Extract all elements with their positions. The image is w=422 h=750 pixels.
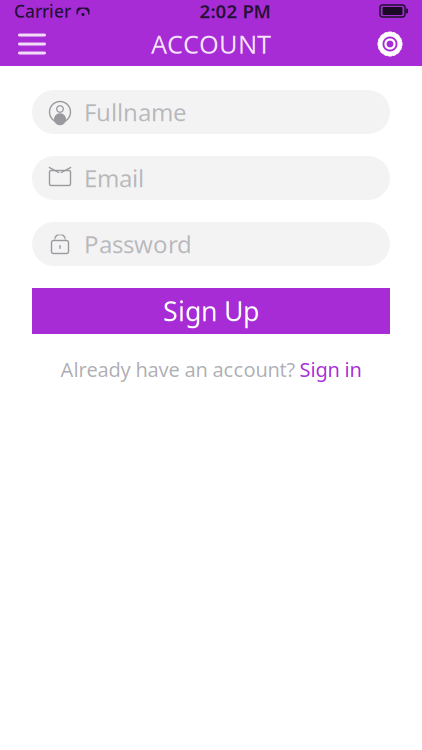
staticText: ACCOUNT	[151, 27, 271, 61]
button[interactable]: Sign Up	[32, 288, 390, 334]
staticText: Carrier	[14, 0, 71, 22]
button[interactable]: Email	[32, 156, 390, 200]
staticText: Password	[84, 228, 192, 260]
button[interactable]: Already have an account?	[60, 356, 361, 383]
button[interactable]: Fullname	[32, 90, 390, 134]
button[interactable]: Password	[32, 222, 390, 266]
staticText: Email	[84, 162, 144, 194]
button[interactable]: Settings	[364, 22, 416, 66]
staticText: Already have an account?	[60, 356, 295, 383]
button[interactable]: Menu	[6, 22, 58, 66]
staticText: Fullname	[84, 96, 187, 128]
staticText: Sign Up	[163, 293, 259, 329]
staticText: 2:02 PM	[199, 0, 270, 23]
staticText: Sign in	[299, 356, 361, 383]
